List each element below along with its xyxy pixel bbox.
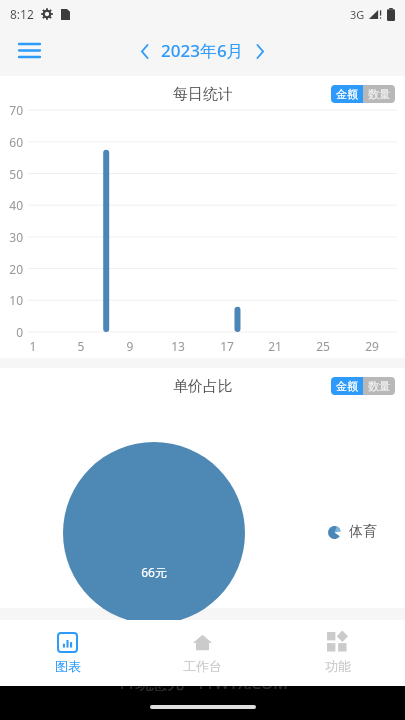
button[interactable]: 数量 xyxy=(363,85,395,103)
staticText: 25 xyxy=(311,338,335,354)
staticText: 9 xyxy=(118,338,142,354)
staticText: 1 xyxy=(21,338,45,354)
staticText: 60 xyxy=(0,134,23,150)
staticText: 40 xyxy=(0,197,23,213)
staticText: 21 xyxy=(263,338,287,354)
staticText: 13 xyxy=(166,338,190,354)
staticText: 17 xyxy=(215,338,239,354)
staticText: 金额 xyxy=(336,379,358,393)
staticText: 30 xyxy=(0,229,23,245)
staticText: 工作台 xyxy=(183,658,222,674)
staticText: 66元 xyxy=(131,564,177,580)
staticText: 图表 xyxy=(55,658,81,674)
staticText: 50 xyxy=(0,166,23,182)
staticText: 单价占比 xyxy=(173,377,233,396)
staticText: 10 xyxy=(0,292,23,308)
staticText: 0 xyxy=(0,324,23,340)
staticText: 2023年6月 xyxy=(161,39,244,62)
staticText: 3G xyxy=(350,7,365,22)
staticText: 20 xyxy=(0,261,23,277)
button[interactable]: 2023年6月 xyxy=(158,35,247,66)
button[interactable]: Previous month xyxy=(132,38,158,64)
staticText: 29 xyxy=(360,338,384,354)
staticText: 数量 xyxy=(368,379,390,393)
button[interactable]: Menu xyxy=(10,31,48,69)
staticText: 5 xyxy=(69,338,93,354)
staticText: 8:12 xyxy=(10,6,34,22)
button[interactable]: 工作台 xyxy=(135,620,270,686)
staticText: 70 xyxy=(0,102,23,118)
button[interactable]: 图表 xyxy=(0,620,135,686)
button[interactable]: 金额 xyxy=(331,377,363,395)
button[interactable]: Next month xyxy=(247,38,273,64)
staticText: 每日统计 xyxy=(173,85,233,104)
button[interactable]: 金额 xyxy=(331,85,363,103)
staticText: 体育 xyxy=(349,523,377,541)
staticText: 功能 xyxy=(325,658,351,674)
staticText: 数量 xyxy=(368,87,390,101)
button[interactable]: 功能 xyxy=(270,620,405,686)
staticText: 11玩意儿 · 11WYX.COM xyxy=(117,672,288,694)
staticText: 金额 xyxy=(336,87,358,101)
button[interactable]: 数量 xyxy=(363,377,395,395)
